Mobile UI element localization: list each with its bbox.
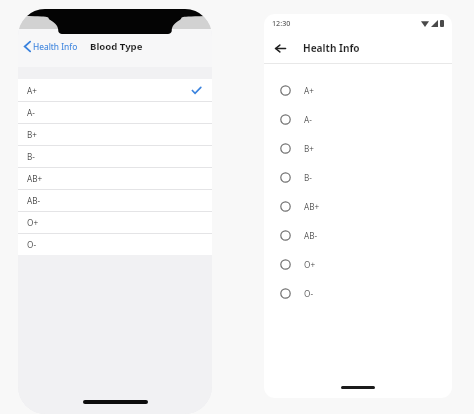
button[interactable]: AB- [264,221,452,250]
staticText: B+ [27,129,38,140]
button[interactable]: A+ [18,79,212,101]
staticText: O+ [27,217,39,228]
staticText: A- [304,114,312,125]
button[interactable]: A- [18,101,212,123]
button[interactable]: O- [18,233,212,255]
staticText: AB+ [27,173,43,184]
staticText: AB- [27,195,41,206]
button[interactable]: Back [270,38,290,58]
staticText: A+ [304,85,314,96]
staticText: Health Info [33,41,78,52]
button[interactable]: O- [264,279,452,308]
staticText: B- [304,172,312,183]
staticText: Blood Type [90,40,143,53]
staticText: AB- [304,230,318,241]
button[interactable]: B+ [18,123,212,145]
button[interactable]: A- [264,105,452,134]
button[interactable]: Health Info [18,38,86,55]
button[interactable]: AB- [18,189,212,211]
button[interactable]: AB+ [18,167,212,189]
button[interactable]: O+ [264,250,452,279]
button[interactable]: A+ [264,76,452,105]
button[interactable]: B- [18,145,212,167]
staticText: B+ [304,143,315,154]
staticText: Health Info [303,41,360,55]
button[interactable]: O+ [18,211,212,233]
staticText: O- [304,288,314,299]
staticText: AB+ [304,201,320,212]
button[interactable]: B+ [264,134,452,163]
staticText: A+ [27,85,37,96]
staticText: O+ [304,259,316,270]
staticText: O- [27,239,37,250]
staticText: A- [27,107,35,118]
staticText: 12:30 [272,18,291,28]
staticText: B- [27,151,35,162]
button[interactable]: AB+ [264,192,452,221]
button[interactable]: B- [264,163,452,192]
